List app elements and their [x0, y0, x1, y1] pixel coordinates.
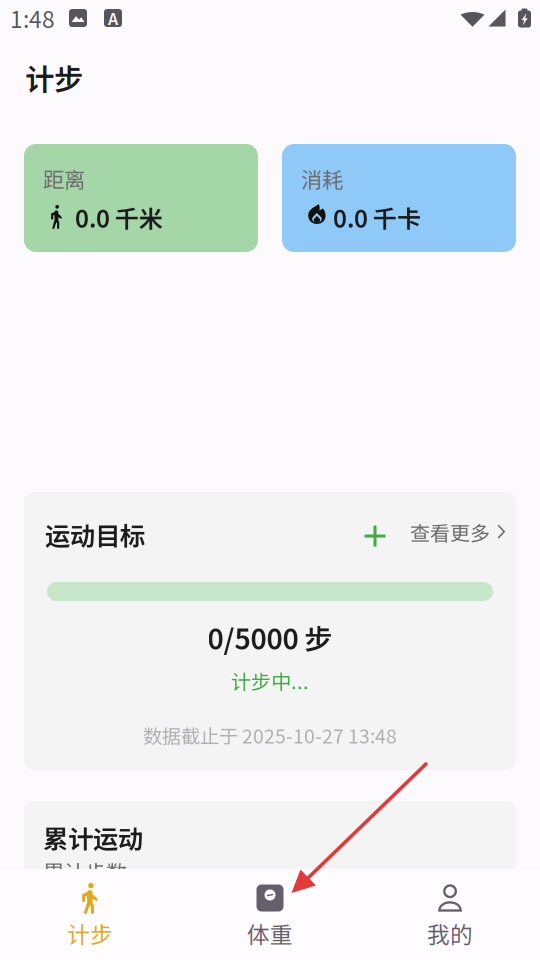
button[interactable]: 我的 [360, 869, 540, 960]
staticText: 查看更多 [410, 517, 490, 546]
staticText: 计步中... [231, 666, 309, 695]
staticText: 计步 [25, 56, 83, 98]
staticText: 1:48 [10, 2, 55, 34]
staticText: 0.0 千米 [75, 200, 163, 235]
staticText: 体重 [247, 917, 293, 950]
button[interactable]: 添加运动目标 [353, 514, 397, 558]
button[interactable]: 距离 [24, 144, 258, 252]
staticText: 0/5000 步 [207, 617, 332, 657]
staticText: 我的 [427, 917, 473, 950]
button[interactable]: 体重 [180, 869, 360, 960]
staticText: 数据截止于 2025-10-27 13:48 [143, 721, 397, 749]
button[interactable]: 查看更多 [402, 510, 513, 554]
staticText: 距离 [43, 163, 85, 194]
staticText: 0.0 千卡 [333, 200, 421, 235]
staticText: 累计运动 [43, 819, 143, 856]
staticText: A [108, 6, 118, 30]
staticText: 消耗 [301, 163, 343, 194]
staticText: 运动目标 [45, 516, 145, 553]
button[interactable]: 消耗 [282, 144, 516, 252]
staticText: 计步 [67, 917, 113, 950]
button[interactable]: 计步 [0, 869, 180, 960]
staticText: 累计步数 [43, 856, 127, 887]
